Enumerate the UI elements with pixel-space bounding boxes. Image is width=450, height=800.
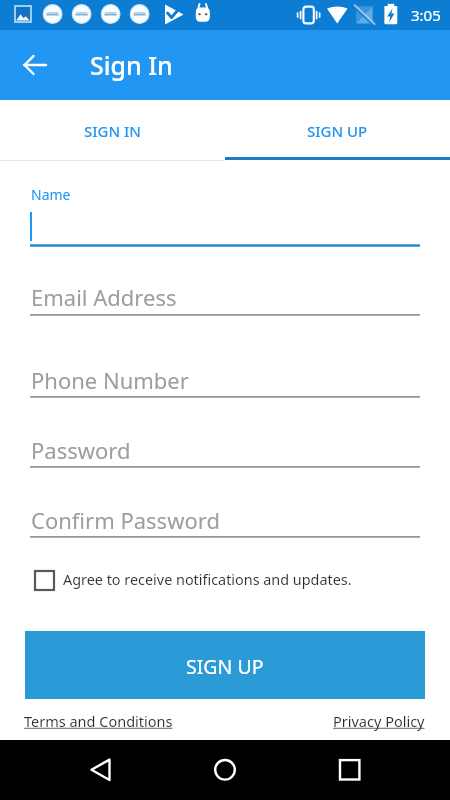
button[interactable]: Back xyxy=(78,748,122,792)
button[interactable]: SIGN IN xyxy=(0,100,225,161)
button[interactable]: Privacy Policy xyxy=(333,711,425,731)
button[interactable]: Terms and Conditions xyxy=(24,711,173,731)
button[interactable]: Back xyxy=(12,42,58,88)
staticText: Phone Number xyxy=(31,365,189,395)
staticText: Name xyxy=(31,185,71,204)
staticText: 3:05 xyxy=(411,5,441,25)
staticText: SIGN UP xyxy=(307,121,368,141)
staticText: Email Address xyxy=(31,282,177,312)
button[interactable]: SIGN UP xyxy=(225,100,450,161)
staticText: SIGN UP xyxy=(186,653,264,680)
button[interactable]: Agree to receive notifications and updat… xyxy=(34,566,364,594)
staticText: Confirm Password xyxy=(31,505,220,535)
staticText: Sign In xyxy=(90,48,173,82)
staticText: Agree to receive notifications and updat… xyxy=(63,570,352,590)
staticText: Password xyxy=(31,435,131,465)
button[interactable]: SIGN UP xyxy=(25,631,425,699)
staticText: SIGN IN xyxy=(84,121,141,141)
button[interactable]: Recent apps xyxy=(328,748,372,792)
button[interactable]: Home xyxy=(203,748,247,792)
